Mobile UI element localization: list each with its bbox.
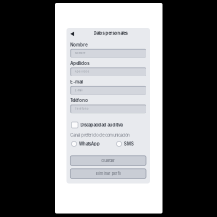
staticText: Apellidos xyxy=(75,70,89,73)
staticText: SMS xyxy=(124,141,134,146)
staticText: Nombre xyxy=(75,51,86,55)
button[interactable]: WhatsApp xyxy=(71,141,100,146)
button[interactable]: Back xyxy=(70,32,74,36)
staticText: Teléfono xyxy=(70,98,88,103)
staticText: Eliminar perfil xyxy=(96,171,121,176)
staticText: Apellidos xyxy=(70,61,89,66)
staticText: Datos personales xyxy=(93,31,127,36)
staticText: Teléfono xyxy=(75,107,89,110)
staticText: Guardar xyxy=(101,158,115,163)
staticText: Discapacidad auditiva xyxy=(80,122,122,128)
button[interactable]: SMS xyxy=(116,141,134,146)
button[interactable]: Discapacidad auditiva xyxy=(71,122,147,128)
staticText: Nombre xyxy=(70,42,87,47)
button[interactable]: Guardar xyxy=(70,156,146,165)
button[interactable]: Eliminar perfil xyxy=(70,169,146,178)
staticText: Canal preferido de comunicación xyxy=(70,133,129,138)
staticText: E-mail xyxy=(70,79,83,84)
staticText: E-mail xyxy=(75,88,83,92)
staticText: WhatsApp xyxy=(79,141,100,146)
